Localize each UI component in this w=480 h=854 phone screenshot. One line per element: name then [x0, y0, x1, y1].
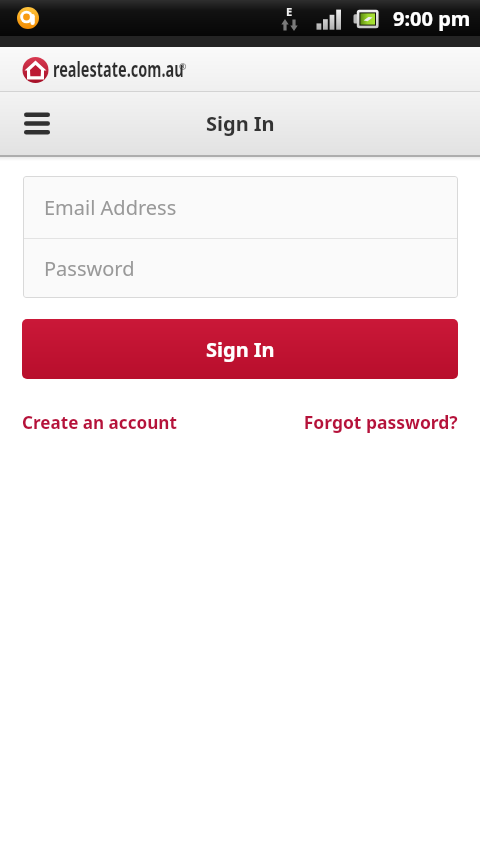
staticText: Sign In: [206, 336, 275, 363]
staticText: E: [286, 4, 293, 19]
staticText: Password: [44, 255, 135, 282]
staticText: 9:00 pm: [393, 5, 471, 32]
staticText: Sign In: [206, 110, 275, 137]
button[interactable]: Email Address: [23, 176, 458, 238]
button[interactable]: Forgot password?: [299, 410, 458, 435]
button[interactable]: Create an account: [22, 410, 185, 435]
button[interactable]: Sign In: [22, 319, 458, 379]
staticText: realestate.com.au: [53, 55, 184, 84]
staticText: Email Address: [44, 194, 177, 221]
button[interactable]: Password: [23, 239, 458, 298]
button[interactable]: [14, 102, 60, 146]
staticText: ®: [179, 60, 187, 72]
